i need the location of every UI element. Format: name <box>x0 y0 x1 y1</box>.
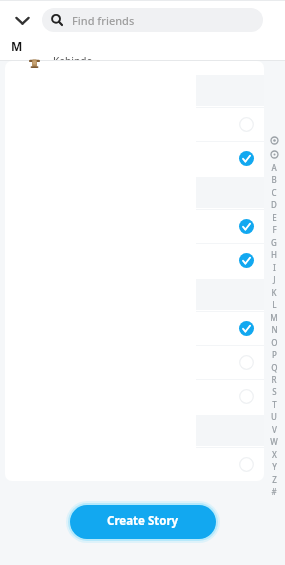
staticText: # <box>271 486 277 497</box>
staticText: M <box>270 312 278 323</box>
staticText: B <box>271 174 277 185</box>
staticText: T <box>272 399 277 410</box>
staticText: Kehinde <box>53 57 93 60</box>
staticText: W <box>270 436 278 447</box>
staticText: U <box>271 411 277 422</box>
button[interactable]: Kehinde <box>20 57 160 63</box>
staticText: Z <box>272 474 277 485</box>
button[interactable]: Alphabet index <box>265 133 283 144</box>
staticText: H <box>271 249 277 260</box>
button[interactable] <box>196 243 264 277</box>
staticText: A <box>271 162 277 173</box>
staticText: Create Story <box>107 513 179 529</box>
button[interactable]: Create Story <box>70 505 216 539</box>
staticText: M <box>11 38 23 54</box>
staticText: Find friends <box>72 13 135 28</box>
staticText: J <box>273 274 276 285</box>
button[interactable] <box>196 209 264 243</box>
staticText: O <box>271 337 278 348</box>
button[interactable]: Collapse <box>8 6 36 34</box>
staticText: I <box>273 262 276 273</box>
staticText: F <box>272 224 277 235</box>
button[interactable] <box>196 141 264 175</box>
staticText: E <box>272 212 277 223</box>
staticText: C <box>271 187 277 198</box>
staticText: G <box>271 237 277 248</box>
staticText: V <box>272 424 277 435</box>
button[interactable] <box>196 311 264 345</box>
staticText: K <box>271 287 277 298</box>
staticText: D <box>271 199 277 210</box>
staticText: L <box>272 299 277 310</box>
staticText: R <box>271 374 277 385</box>
staticText: Q <box>271 362 278 373</box>
staticText: N <box>271 324 278 335</box>
button[interactable]: Find friends <box>42 8 263 32</box>
staticText: P <box>272 349 277 360</box>
staticText: Y <box>272 461 277 472</box>
staticText: X <box>272 449 277 460</box>
staticText: S <box>272 386 277 397</box>
